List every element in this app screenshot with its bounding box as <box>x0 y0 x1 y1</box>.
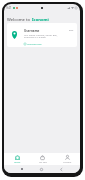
staticText: Home <box>14 161 21 164</box>
staticText: Welcome to <box>7 17 32 23</box>
staticText: Allocate now <box>27 42 42 45</box>
button[interactable]: Account <box>55 154 80 165</box>
staticText: Account <box>63 161 72 164</box>
other: My Cart <box>40 155 45 160</box>
other: Home <box>15 155 20 160</box>
staticText: 757 Smith Avenue, South Bay, Francisco C… <box>24 33 58 39</box>
other: Account <box>65 155 70 160</box>
staticText: 9:41 <box>6 6 12 10</box>
staticText: My Cart <box>39 161 47 164</box>
staticText: Iconomi <box>32 17 49 23</box>
button[interactable]: Username <box>7 23 77 47</box>
staticText: Username <box>24 29 40 33</box>
button[interactable]: My Cart <box>30 154 55 165</box>
staticText: Edit <box>69 28 74 31</box>
button[interactable]: Home <box>4 154 30 165</box>
